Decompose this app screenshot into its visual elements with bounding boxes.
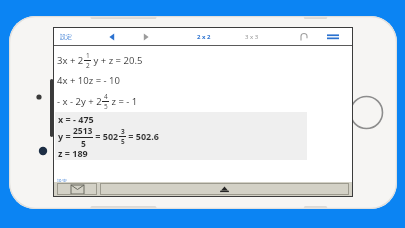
staticText: 2 x 2 [197,33,211,41]
staticText: 1 [86,51,90,60]
button[interactable]: Home [349,95,384,130]
staticText: 2513 [73,125,93,137]
staticText: 設定 [60,33,72,41]
staticText: 5 [81,138,86,147]
staticText: 3 [121,127,125,136]
staticText: 4x + 10z = - 10 [57,74,120,87]
staticText: 3 x 3 [245,33,259,41]
staticText: - x - 2y + 2 [57,95,102,108]
button[interactable]: 3 x 3 [245,33,259,41]
staticText: 4 [104,92,108,101]
staticText: y + z = 20.5 [91,54,143,67]
button[interactable]: Expand keyboard [100,183,349,195]
button[interactable]: 4x + 10z = - 10 [57,71,352,90]
staticText: y = [58,130,73,142]
staticText: z = 189 [58,147,88,159]
button[interactable]: 設定 [60,33,72,41]
staticText: 設定 [57,178,67,182]
button[interactable]: 設定 [57,178,67,182]
staticText: = 502 [93,130,119,142]
button[interactable]: Menu [322,29,344,45]
button[interactable]: Previous [104,29,120,45]
button[interactable]: - x - 2y + 2 [57,90,352,112]
staticText: x = - 475 [58,113,94,125]
staticText: 3x + 2 [57,54,84,67]
staticText: 2 [86,61,90,70]
button[interactable]: x = - 475 [55,112,307,160]
staticText: 5 [104,102,108,111]
staticText: z = - 1 [109,95,138,108]
button[interactable]: Mail [57,183,97,195]
button[interactable]: 2 x 2 [197,33,211,41]
button[interactable]: Undo [296,29,312,45]
staticText: 5 [121,137,125,146]
button[interactable]: 3x + 2 [57,49,352,71]
button[interactable]: Next [138,29,154,45]
staticText: = 502.6 [126,130,159,142]
